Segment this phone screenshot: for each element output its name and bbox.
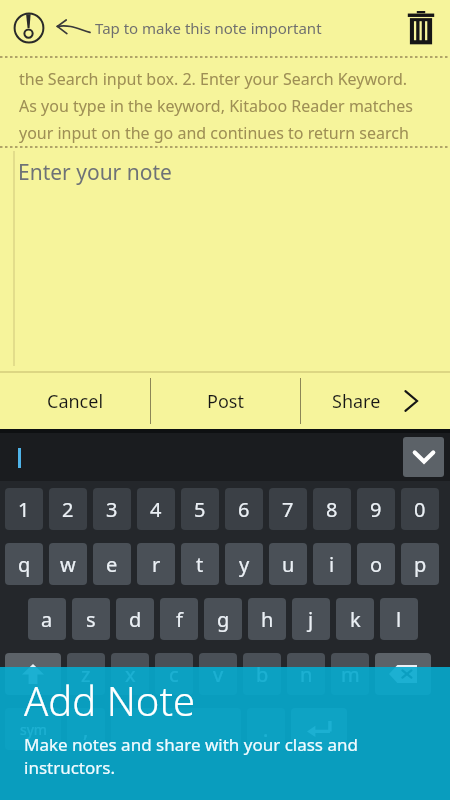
- staticText: .: [263, 716, 269, 743]
- staticText: your input on the go and continues to re…: [19, 122, 409, 149]
- button[interactable]: Add Note: [0, 667, 450, 800]
- button[interactable]: Post: [151, 373, 300, 429]
- staticText: m: [341, 661, 360, 688]
- button[interactable]: sym: [5, 708, 61, 750]
- staticText: 9: [370, 496, 382, 523]
- staticText: Post: [207, 389, 244, 414]
- button[interactable]: u: [269, 543, 307, 585]
- button[interactable]: l: [380, 598, 418, 640]
- staticText: a: [41, 606, 53, 633]
- staticText: h: [261, 606, 274, 633]
- button[interactable]: d: [116, 598, 154, 640]
- button[interactable]: 5: [181, 488, 219, 530]
- staticText: 5: [194, 496, 206, 523]
- staticText: Add Note: [24, 673, 196, 727]
- button[interactable]: p: [401, 543, 439, 585]
- button[interactable]: y: [225, 543, 263, 585]
- button[interactable]: ,: [67, 708, 105, 750]
- staticText: 0: [414, 496, 426, 523]
- button[interactable]: c: [155, 653, 193, 695]
- button[interactable]: Hide keyboard: [403, 437, 444, 477]
- button[interactable]: Key: [375, 653, 431, 695]
- button[interactable]: b: [243, 653, 281, 695]
- staticText: l: [396, 606, 402, 633]
- button[interactable]: e: [93, 543, 131, 585]
- button[interactable]: w: [49, 543, 87, 585]
- button[interactable]: j: [292, 598, 330, 640]
- staticText: v: [213, 661, 224, 688]
- staticText: the Search input box. 2. Enter your Sear…: [19, 68, 408, 95]
- staticText: Cancel: [47, 389, 104, 414]
- staticText: Make notes and share with your class and: [24, 733, 358, 756]
- staticText: r: [152, 551, 161, 578]
- staticText: 4: [150, 496, 162, 523]
- staticText: x: [125, 661, 136, 688]
- button[interactable]: m: [331, 653, 369, 695]
- button[interactable]: 6: [225, 488, 263, 530]
- button[interactable]: 2: [49, 488, 87, 530]
- staticText: t: [196, 551, 204, 578]
- button[interactable]: Enter your note: [0, 148, 450, 368]
- button[interactable]: k: [336, 598, 374, 640]
- staticText: c: [169, 661, 179, 688]
- button[interactable]: v: [199, 653, 237, 695]
- staticText: ,: [83, 716, 89, 743]
- staticText: j: [308, 606, 314, 633]
- button[interactable]: 1: [5, 488, 43, 530]
- staticText: 1: [18, 496, 30, 523]
- staticText: g: [217, 606, 230, 633]
- staticText: sym: [20, 720, 47, 739]
- staticText: 8: [326, 496, 338, 523]
- button[interactable]: o: [357, 543, 395, 585]
- staticText: 3: [106, 496, 118, 523]
- staticText: e: [106, 551, 118, 578]
- staticText: q: [18, 551, 31, 578]
- staticText: o: [370, 551, 383, 578]
- button[interactable]: s: [72, 598, 110, 640]
- button[interactable]: 4: [137, 488, 175, 530]
- staticText: u: [282, 551, 295, 578]
- staticText: 2: [62, 496, 74, 523]
- staticText: z: [81, 661, 91, 688]
- button[interactable]: q: [5, 543, 43, 585]
- button[interactable]: 9: [357, 488, 395, 530]
- staticText: n: [300, 661, 313, 688]
- staticText: p: [414, 551, 427, 578]
- button[interactable]: Cancel: [0, 373, 150, 429]
- button[interactable]: f: [160, 598, 198, 640]
- button[interactable]: n: [287, 653, 325, 695]
- button[interactable]: g: [204, 598, 242, 640]
- button[interactable]: 7: [269, 488, 307, 530]
- button[interactable]: Delete note: [392, 0, 450, 56]
- staticText: d: [129, 606, 142, 633]
- button[interactable]: h: [248, 598, 286, 640]
- button[interactable]: x: [111, 653, 149, 695]
- staticText: Enter your note: [18, 158, 172, 187]
- staticText: f: [176, 606, 183, 633]
- staticText: w: [60, 551, 76, 578]
- button[interactable]: .: [247, 708, 285, 750]
- button[interactable]: z: [67, 653, 105, 695]
- button[interactable]: [111, 708, 241, 750]
- staticText: k: [350, 606, 361, 633]
- button[interactable]: Key: [291, 708, 347, 750]
- staticText: i: [329, 551, 335, 578]
- staticText: 7: [282, 496, 294, 523]
- staticText: s: [86, 606, 96, 633]
- button[interactable]: 8: [313, 488, 351, 530]
- staticText: b: [256, 661, 269, 688]
- button[interactable]: 0: [401, 488, 439, 530]
- button[interactable]: i: [313, 543, 351, 585]
- staticText: Tap to make this note important: [95, 18, 322, 38]
- staticText: Share: [332, 389, 381, 414]
- button[interactable]: a: [28, 598, 66, 640]
- staticText: As you type in the keyword, Kitaboo Read…: [19, 95, 413, 122]
- staticText: instructors.: [24, 756, 116, 779]
- button[interactable]: r: [137, 543, 175, 585]
- staticText: 6: [238, 496, 250, 523]
- button[interactable]: 3: [93, 488, 131, 530]
- button[interactable]: t: [181, 543, 219, 585]
- button[interactable]: Tap to make this note important: [0, 0, 392, 56]
- button[interactable]: Key: [5, 653, 61, 695]
- button[interactable]: Share: [301, 373, 450, 429]
